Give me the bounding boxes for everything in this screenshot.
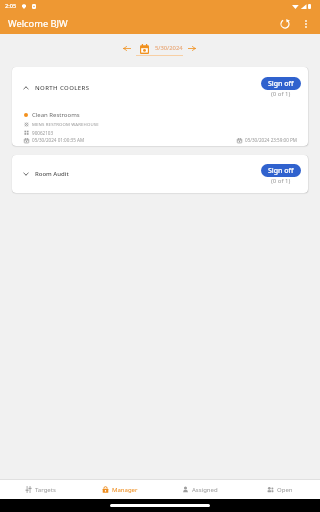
button[interactable]: NORTH COOLERS <box>12 67 308 108</box>
staticText: Welcome BJW <box>8 17 68 30</box>
button[interactable]: Refresh <box>274 13 295 34</box>
staticText: Sign off <box>268 79 294 89</box>
button[interactable]: Previous day <box>121 43 133 53</box>
staticText: Targets <box>35 486 56 494</box>
button[interactable]: Clean Restrooms <box>12 108 308 146</box>
button[interactable]: Next day <box>186 43 198 53</box>
staticText: 90062103 <box>32 130 54 136</box>
staticText: NORTH COOLERS <box>35 84 90 92</box>
button[interactable]: More options <box>295 13 316 34</box>
staticText: Room Audit <box>35 170 69 178</box>
staticText: Open <box>277 486 293 494</box>
staticText: (0 of 1) <box>271 177 291 185</box>
staticText: 05/30/2024 01:00:35 AM <box>32 137 85 143</box>
button[interactable]: 5/30/2024 <box>136 40 183 56</box>
button[interactable]: Room Audit <box>12 155 308 193</box>
button[interactable]: Assigned <box>160 480 240 499</box>
staticText: Sign off <box>268 166 294 176</box>
staticText: 5/30/2024 <box>155 44 183 52</box>
staticText: 05/30/2024 23:59:00 PM <box>245 137 298 143</box>
button[interactable]: Manager <box>80 480 160 499</box>
staticText: Manager <box>112 486 138 494</box>
staticText: 2:05 <box>5 2 17 10</box>
button[interactable]: Sign off <box>261 77 301 90</box>
staticText: Assigned <box>192 486 218 494</box>
staticText: MENS RESTROOM WAREHOUSE <box>32 121 99 127</box>
button[interactable]: Sign off <box>261 164 301 177</box>
staticText: Clean Restrooms <box>32 111 80 119</box>
staticText: (0 of 1) <box>271 90 291 98</box>
button[interactable]: Open <box>240 480 320 499</box>
button[interactable]: Targets <box>0 480 80 499</box>
